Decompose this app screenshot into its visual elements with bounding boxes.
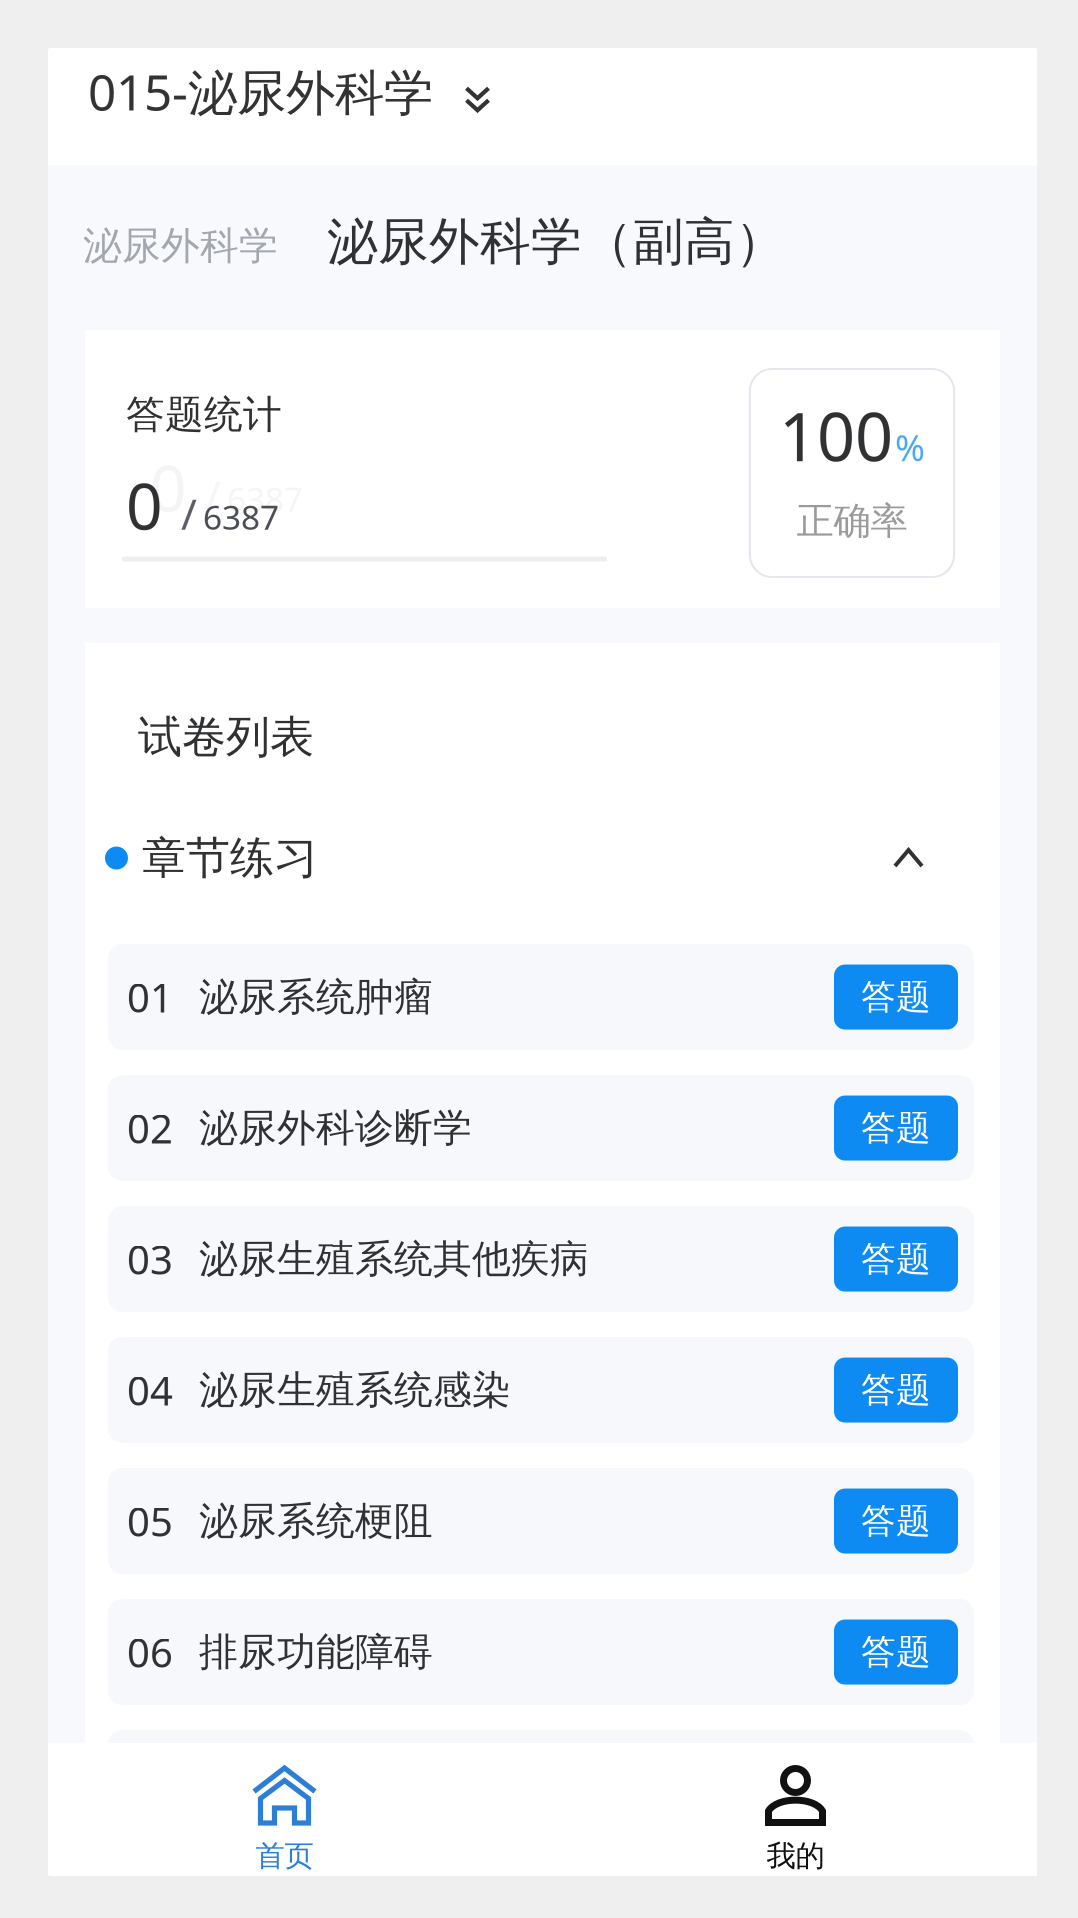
staticText: 6387 bbox=[203, 495, 279, 539]
staticText: 答题 bbox=[861, 1107, 931, 1149]
button[interactable]: 01 bbox=[108, 944, 974, 1050]
staticText: 答题 bbox=[861, 1369, 931, 1411]
staticText: 答题 bbox=[861, 1631, 931, 1673]
button[interactable]: 章节练习 bbox=[85, 810, 1000, 906]
staticText: 100 bbox=[779, 391, 893, 479]
staticText: 泌尿外科诊断学 bbox=[199, 1104, 472, 1152]
staticText: 015-泌尿外科学 bbox=[88, 58, 433, 124]
staticText: 泌尿外科学（副高） bbox=[327, 211, 786, 273]
staticText: 泌尿生殖系统感染 bbox=[199, 1366, 511, 1414]
staticText: 04 bbox=[127, 1363, 173, 1417]
button[interactable]: 我的 bbox=[559, 1743, 1032, 1876]
staticText: 泌尿系统肿瘤 bbox=[199, 973, 433, 1021]
staticText: 答题 bbox=[861, 1500, 931, 1542]
staticText: 06 bbox=[127, 1625, 173, 1679]
staticText: 6387 bbox=[227, 477, 303, 521]
staticText: 0 bbox=[126, 462, 163, 547]
staticText: 章节练习 bbox=[142, 831, 318, 885]
staticText: 正确率 bbox=[796, 498, 907, 544]
staticText: / bbox=[181, 485, 197, 542]
staticText: 泌尿生殖系统其他疾病 bbox=[199, 1235, 589, 1283]
button[interactable]: 02 bbox=[108, 1075, 974, 1181]
button[interactable]: 04 bbox=[108, 1337, 974, 1443]
staticText: 03 bbox=[127, 1232, 173, 1286]
staticText: 01 bbox=[127, 970, 173, 1024]
staticText: 试卷列表 bbox=[138, 710, 314, 764]
staticText: % bbox=[895, 423, 925, 471]
staticText: 02 bbox=[127, 1101, 173, 1155]
button[interactable]: 015-泌尿外科学 bbox=[88, 58, 491, 124]
staticText: 我的 bbox=[766, 1838, 824, 1874]
button[interactable]: 05 bbox=[108, 1468, 974, 1574]
button[interactable]: 06 bbox=[108, 1599, 974, 1705]
staticText: 答题 bbox=[861, 976, 931, 1018]
staticText: 0 bbox=[150, 444, 187, 529]
staticText: 05 bbox=[127, 1494, 173, 1548]
staticText: 泌尿系统梗阻 bbox=[199, 1497, 433, 1545]
staticText: 答题统计 bbox=[126, 391, 282, 438]
staticText: / bbox=[205, 467, 221, 524]
button[interactable]: 03 bbox=[108, 1206, 974, 1312]
staticText: 排尿功能障碍 bbox=[199, 1628, 433, 1676]
button[interactable]: 07 bbox=[108, 1730, 974, 1836]
button[interactable]: 首页 bbox=[48, 1743, 521, 1876]
staticText: 泌尿外科学 bbox=[83, 222, 278, 270]
staticText: 肾上腺疾病 bbox=[199, 1759, 394, 1807]
staticText: 答题 bbox=[861, 1238, 931, 1280]
staticText: 首页 bbox=[255, 1838, 313, 1874]
